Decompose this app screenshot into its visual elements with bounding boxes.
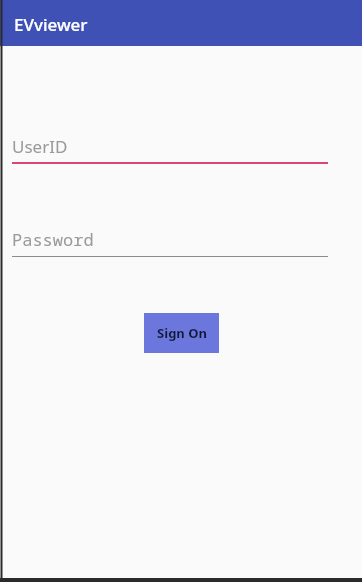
- button[interactable]: Sign On: [144, 313, 219, 353]
- staticText: Sign On: [157, 324, 207, 342]
- staticText: UserID: [12, 135, 68, 158]
- button[interactable]: UserID: [12, 130, 328, 164]
- staticText: Password: [12, 228, 94, 251]
- staticText: EVviewer: [14, 13, 88, 36]
- button[interactable]: Password: [12, 223, 328, 257]
